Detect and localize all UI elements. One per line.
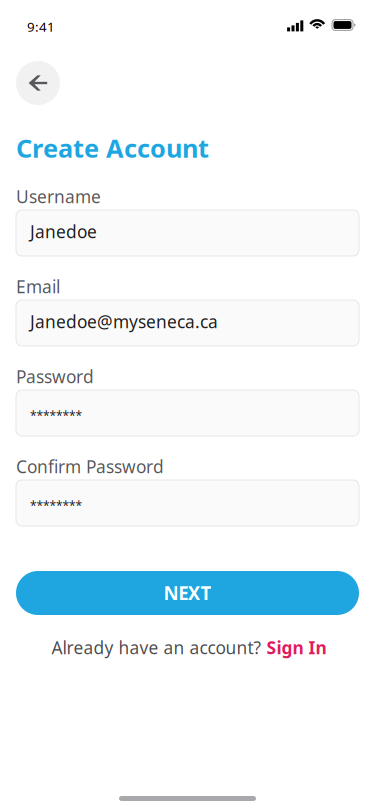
staticText: Already have an account? — [51, 636, 266, 659]
staticText: Confirm Password — [16, 455, 164, 478]
staticText: ******** — [30, 497, 82, 513]
button[interactable]: Sign In — [266, 636, 326, 659]
staticText: Username — [16, 185, 101, 208]
staticText: Email — [16, 275, 60, 298]
button[interactable]: NEXT — [16, 571, 359, 615]
staticText: Create Account — [16, 131, 209, 165]
staticText: Janedoe@myseneca.ca — [30, 310, 218, 333]
staticText: NEXT — [164, 581, 211, 605]
staticText: Password — [16, 365, 94, 388]
button[interactable]: Back — [16, 61, 60, 105]
staticText: ******** — [30, 407, 82, 423]
staticText: 9:41 — [27, 18, 55, 35]
staticText: Janedoe — [30, 220, 97, 243]
staticText: Sign In — [266, 636, 326, 659]
